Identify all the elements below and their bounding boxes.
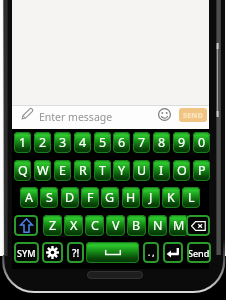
staticText: 9 bbox=[178, 134, 186, 151]
staticText: Y bbox=[118, 162, 126, 179]
staticText: SYM bbox=[17, 247, 36, 259]
staticText: I bbox=[159, 162, 164, 179]
staticText: ?! bbox=[72, 246, 80, 260]
button[interactable]: H bbox=[122, 187, 140, 208]
button[interactable]: T bbox=[94, 160, 111, 181]
button[interactable] bbox=[158, 108, 171, 121]
staticText: 4 bbox=[79, 134, 87, 151]
staticText: SEND bbox=[183, 110, 203, 120]
button[interactable]: L bbox=[182, 187, 200, 208]
button[interactable]: F bbox=[81, 187, 99, 208]
button[interactable]: J bbox=[142, 187, 160, 208]
button[interactable]: E bbox=[54, 160, 71, 181]
button[interactable]: W bbox=[34, 160, 51, 181]
staticText: 2 bbox=[39, 134, 47, 151]
staticText: M bbox=[173, 217, 185, 234]
button[interactable]: R bbox=[74, 160, 91, 181]
button[interactable]: Y bbox=[113, 160, 130, 181]
staticText: 8 bbox=[158, 134, 166, 151]
staticText: C bbox=[91, 217, 99, 234]
button[interactable]: Z bbox=[43, 215, 62, 236]
staticText: 1 bbox=[19, 134, 27, 151]
staticText: K bbox=[167, 189, 175, 206]
staticText: W bbox=[37, 162, 49, 179]
button[interactable]: O bbox=[173, 160, 190, 181]
button[interactable]: 3 bbox=[54, 132, 71, 153]
staticText: . , bbox=[148, 247, 155, 258]
button[interactable] bbox=[86, 242, 139, 263]
button[interactable] bbox=[186, 215, 210, 236]
button[interactable]: 0 bbox=[193, 132, 210, 153]
button[interactable]: K bbox=[162, 187, 180, 208]
button[interactable]: 2 bbox=[34, 132, 51, 153]
button[interactable]: SEND bbox=[179, 108, 207, 122]
button[interactable]: A bbox=[20, 187, 38, 208]
staticText: T bbox=[99, 162, 106, 179]
staticText: A bbox=[25, 189, 33, 206]
button[interactable]: Q bbox=[14, 160, 31, 181]
staticText: Z bbox=[49, 217, 57, 234]
button[interactable]: G bbox=[101, 187, 119, 208]
button[interactable]: C bbox=[85, 215, 104, 236]
staticText: 3 bbox=[59, 134, 67, 151]
staticText: J bbox=[149, 189, 153, 206]
staticText: 0 bbox=[198, 134, 206, 151]
button[interactable]: M bbox=[169, 215, 188, 236]
staticText: U bbox=[137, 162, 147, 179]
staticText: 7 bbox=[138, 134, 146, 151]
button[interactable]: 6 bbox=[113, 132, 130, 153]
staticText: V bbox=[112, 217, 120, 234]
button[interactable]: 4 bbox=[74, 132, 91, 153]
staticText: L bbox=[188, 189, 195, 206]
button[interactable] bbox=[42, 242, 63, 263]
staticText: E bbox=[59, 162, 66, 179]
staticText: X bbox=[70, 217, 78, 234]
button[interactable]: V bbox=[106, 215, 125, 236]
button[interactable]: ?! bbox=[67, 242, 84, 263]
button[interactable]: 9 bbox=[173, 132, 190, 153]
button[interactable]: Send bbox=[187, 242, 211, 263]
button[interactable]: 5 bbox=[94, 132, 111, 153]
staticText: 5 bbox=[99, 134, 107, 151]
staticText: H bbox=[126, 189, 136, 206]
staticText: D bbox=[65, 189, 75, 206]
button[interactable]: S bbox=[40, 187, 58, 208]
button[interactable] bbox=[14, 215, 38, 236]
button[interactable]: P bbox=[193, 160, 210, 181]
button[interactable]: X bbox=[64, 215, 83, 236]
staticText: S bbox=[46, 189, 53, 206]
staticText: 6 bbox=[118, 134, 126, 151]
staticText: Q bbox=[18, 162, 28, 179]
staticText: B bbox=[132, 217, 141, 234]
button[interactable]: 8 bbox=[153, 132, 170, 153]
button[interactable]: B bbox=[127, 215, 146, 236]
staticText: F bbox=[87, 189, 94, 206]
button[interactable]: U bbox=[133, 160, 150, 181]
staticText: G bbox=[105, 189, 115, 206]
staticText: O bbox=[177, 162, 187, 179]
staticText: P bbox=[198, 162, 206, 179]
button[interactable]: D bbox=[61, 187, 79, 208]
staticText: Send bbox=[188, 247, 210, 259]
button[interactable]: . , bbox=[143, 242, 159, 263]
button[interactable]: N bbox=[148, 215, 167, 236]
button[interactable]: 7 bbox=[133, 132, 150, 153]
staticText: Enter message bbox=[39, 110, 113, 124]
staticText: R bbox=[79, 162, 87, 179]
button[interactable]: 1 bbox=[14, 132, 31, 153]
button[interactable] bbox=[163, 242, 183, 263]
staticText: N bbox=[153, 217, 163, 234]
button[interactable]: SYM bbox=[14, 242, 39, 263]
button[interactable]: I bbox=[153, 160, 170, 181]
